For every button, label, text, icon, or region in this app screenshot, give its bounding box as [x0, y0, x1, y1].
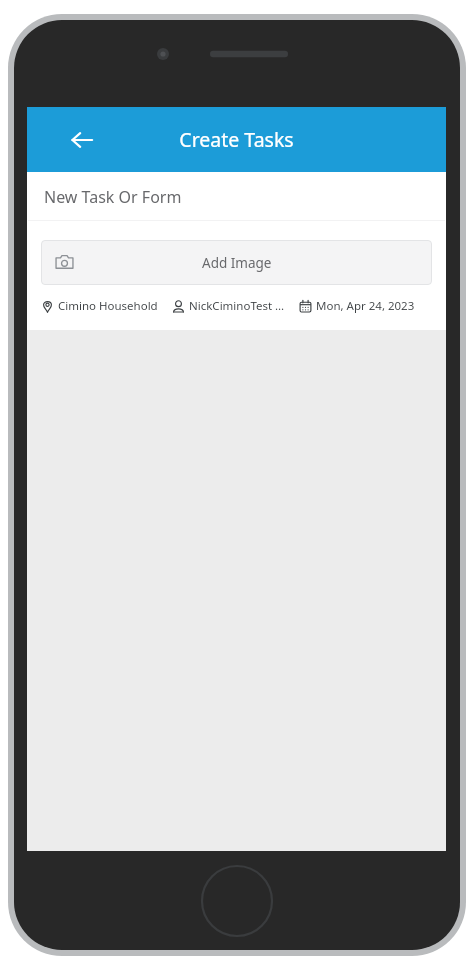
staticText: Cimino Household: [58, 298, 158, 314]
staticText: NickCiminoTest …: [189, 298, 285, 314]
staticText: Create Tasks: [179, 126, 294, 153]
button[interactable]: Mon, Apr 24, 2023: [299, 298, 415, 314]
staticText: Mon, Apr 24, 2023: [316, 298, 415, 314]
button[interactable]: New Task Or Form: [27, 172, 446, 220]
button[interactable]: Add Image: [41, 240, 432, 285]
button[interactable]: NickCiminoTest …: [172, 298, 285, 314]
staticText: New Task Or Form: [44, 186, 182, 208]
staticText: Add Image: [202, 254, 272, 272]
button[interactable]: Back: [54, 112, 110, 168]
button[interactable]: Cimino Household: [41, 298, 158, 314]
